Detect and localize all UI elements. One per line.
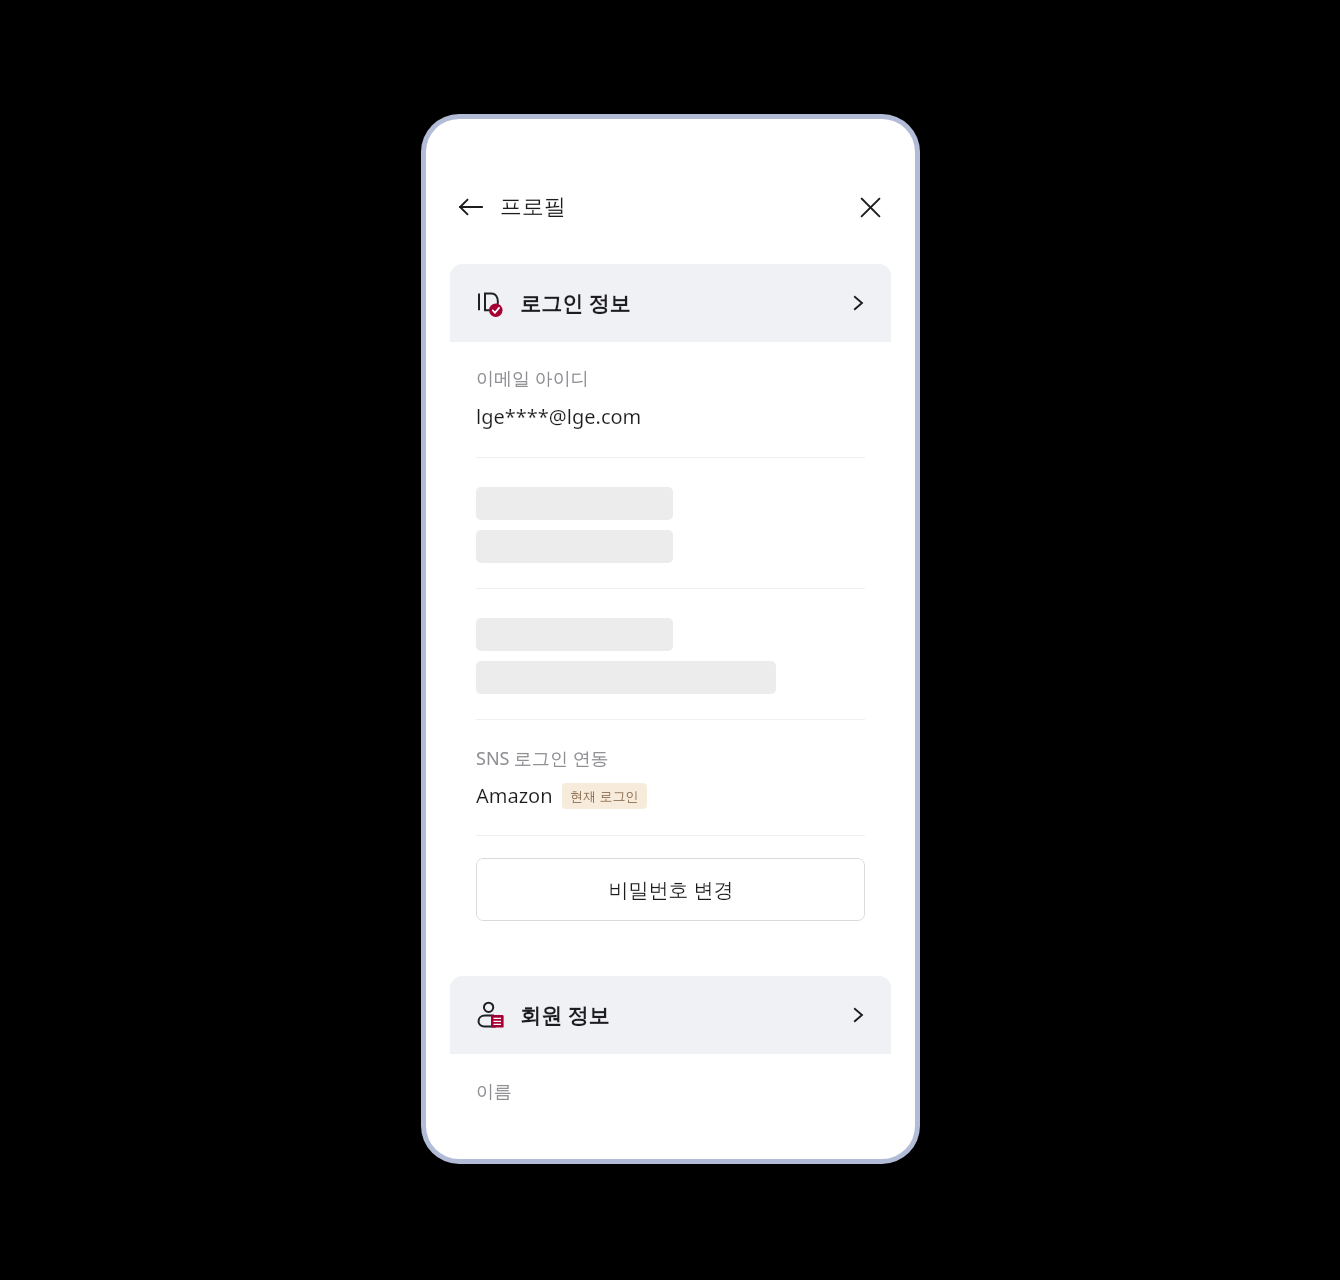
button[interactable]: 회원 정보 [450,976,891,1054]
staticText: 이메일 아이디 [476,366,589,391]
staticText: 회원 정보 [520,1001,610,1030]
button[interactable]: Back [451,187,491,227]
staticText: 이름 [476,1081,512,1104]
button[interactable]: 비밀번호 변경 [476,858,865,921]
staticText: lge****@lge.com [476,403,642,430]
staticText: SNS 로그인 연동 [476,746,609,771]
staticText: 현재 로그인 [570,787,639,805]
staticText: 로그인 정보 [520,289,631,318]
button[interactable]: Close [850,187,890,227]
button[interactable]: 로그인 정보 [450,264,891,342]
staticText: Amazon [476,782,553,809]
staticText: 프로필 [500,193,566,221]
staticText: 비밀번호 변경 [608,876,734,903]
